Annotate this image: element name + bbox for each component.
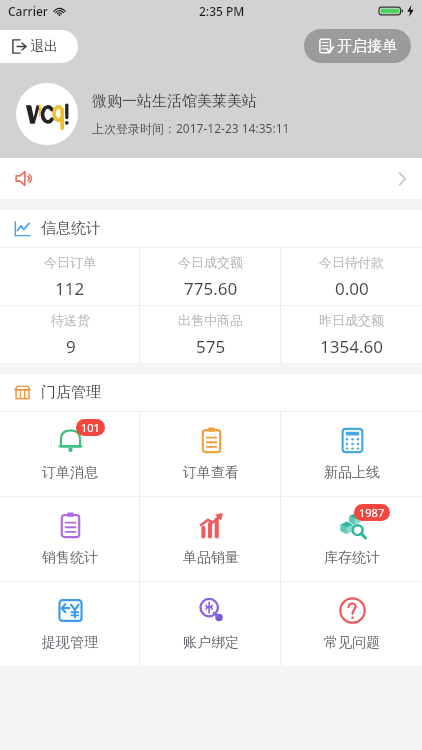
button[interactable]: 常见问题: [281, 582, 422, 666]
button[interactable]: 订单查看: [140, 412, 281, 496]
button[interactable]: 销售统计: [0, 497, 140, 581]
staticText: 门店管理: [41, 383, 101, 402]
staticText: 2:35 PM: [199, 3, 245, 19]
staticText: 112: [55, 277, 85, 300]
staticText: 常见问题: [324, 634, 380, 652]
staticText: 订单查看: [183, 464, 239, 482]
staticText: 库存统计: [324, 549, 380, 567]
staticText: 订单消息: [42, 464, 98, 482]
staticText: 今日待付款: [319, 254, 384, 270]
staticText: 开启接单: [337, 37, 397, 56]
button[interactable]: 账户绑定: [140, 582, 281, 666]
staticText: 101: [81, 420, 100, 435]
button[interactable]: 今日订单: [0, 248, 140, 305]
staticText: 0.00: [335, 277, 369, 300]
staticText: 昨日成交额: [319, 312, 384, 328]
staticText: 退出: [30, 38, 58, 56]
staticText: 新品上线: [324, 464, 380, 482]
button[interactable]: 出售中商品: [140, 306, 281, 363]
button[interactable]: 今日待付款: [281, 248, 422, 305]
staticText: 微购一站生活馆美莱美站: [92, 92, 257, 111]
staticText: 账户绑定: [183, 634, 239, 652]
staticText: 1987: [359, 505, 385, 520]
other: Announcements: [15, 169, 34, 188]
button[interactable]: 退出: [0, 30, 78, 63]
staticText: 出售中商品: [178, 312, 243, 328]
staticText: 1354.60: [320, 335, 383, 358]
staticText: 待送货: [51, 312, 90, 328]
staticText: 今日成交额: [178, 254, 243, 270]
button[interactable]: 提现管理: [0, 582, 140, 666]
staticText: 销售统计: [42, 549, 98, 567]
staticText: 单品销量: [183, 549, 239, 567]
staticText: 上次登录时间：2017-12-23 14:35:11: [92, 120, 290, 136]
button[interactable]: 新品上线: [281, 412, 422, 496]
staticText: 提现管理: [42, 634, 98, 652]
button[interactable]: 昨日成交额: [281, 306, 422, 363]
staticText: 今日订单: [44, 254, 96, 270]
staticText: 575: [196, 335, 226, 358]
button[interactable]: 单品销量: [140, 497, 281, 581]
button[interactable]: 今日成交额: [140, 248, 281, 305]
staticText: 775.60: [184, 277, 238, 300]
button[interactable]: 开启接单: [304, 29, 411, 63]
button[interactable]: Announcements: [0, 158, 422, 199]
staticText: 9: [66, 335, 76, 358]
button[interactable]: 1987: [281, 497, 422, 581]
button[interactable]: 101: [0, 412, 140, 496]
staticText: Carrier: [8, 3, 48, 19]
button[interactable]: 待送货: [0, 306, 140, 363]
staticText: 信息统计: [41, 219, 101, 238]
